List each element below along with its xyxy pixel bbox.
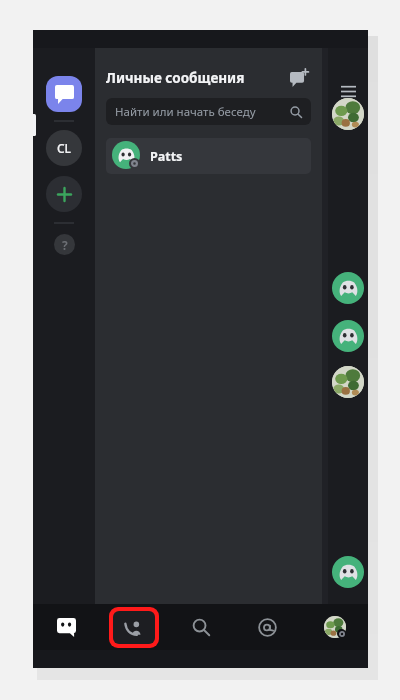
button[interactable]: Add a server [46, 176, 82, 212]
button[interactable]: Friends [113, 611, 155, 644]
button[interactable]: Direct messages [46, 76, 82, 112]
staticText: ? [62, 237, 68, 253]
staticText: Личные сообщения [106, 69, 286, 87]
button[interactable]: Patts [106, 138, 311, 174]
button[interactable]: Servers [33, 604, 100, 650]
button[interactable]: Help [54, 234, 75, 255]
button[interactable]: Member [332, 366, 364, 398]
button[interactable]: Member [332, 98, 364, 130]
button[interactable]: Profile [324, 616, 346, 638]
button[interactable]: Mentions [234, 604, 301, 650]
button[interactable]: Search [167, 604, 234, 650]
button[interactable]: Найти или начать беседу [106, 98, 311, 125]
button[interactable]: Member [332, 556, 364, 588]
staticText: CL [57, 140, 72, 156]
button[interactable]: Member [332, 320, 364, 352]
button[interactable]: CL [46, 130, 82, 166]
button[interactable]: Member [332, 272, 364, 304]
staticText: Patts [150, 148, 183, 165]
button[interactable]: Menu [337, 80, 359, 102]
button[interactable]: New direct message [286, 65, 312, 91]
staticText: Найти или начать беседу [115, 104, 290, 120]
